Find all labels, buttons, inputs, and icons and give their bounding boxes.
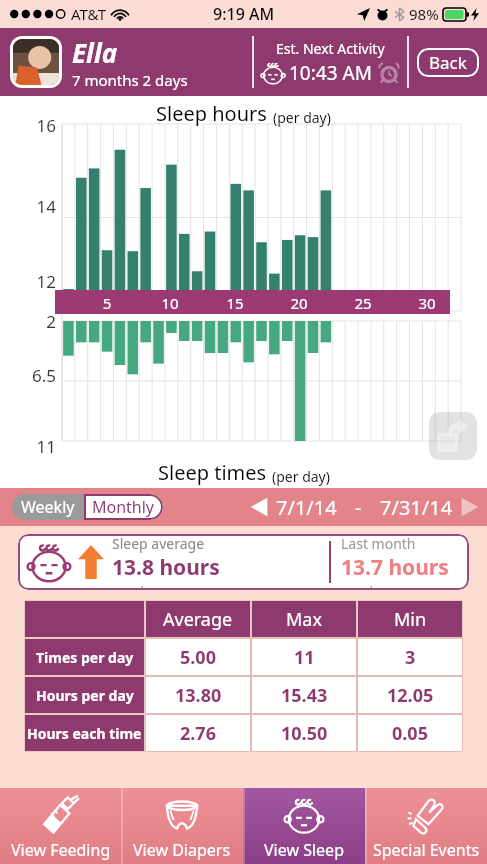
staticText: 5.00 (180, 645, 216, 670)
button[interactable]: View Diapers (121, 788, 243, 864)
staticText: Monthly (92, 496, 155, 518)
staticText: 15.43 (281, 683, 328, 708)
staticText: 15 (223, 293, 247, 313)
staticText: Max (286, 607, 322, 632)
button[interactable]: Monthly (84, 494, 163, 520)
button[interactable]: Next period (459, 496, 481, 518)
staticText: Sleep average (112, 534, 205, 553)
staticText: AT&T (71, 4, 106, 24)
staticText: Weekly (21, 496, 75, 518)
staticText: 10:43 AM (289, 60, 372, 86)
staticText: 13.8 hours (112, 553, 220, 582)
staticText: View Diapers (133, 839, 231, 861)
staticText: - (355, 494, 362, 521)
staticText: 25 (351, 293, 375, 313)
staticText: Last month (341, 534, 416, 553)
button[interactable]: Special Events (365, 788, 487, 864)
staticText: 0.05 (392, 721, 428, 746)
staticText: 13.7 hours (341, 553, 449, 582)
staticText: (per day) (273, 108, 331, 127)
staticText: 3 (405, 645, 416, 670)
button[interactable]: Baby photo (10, 36, 62, 88)
staticText: per day (341, 582, 387, 590)
staticText: Hours per day (36, 686, 134, 705)
staticText: Est. Next Activity (276, 39, 385, 58)
staticText: 7 months 2 days (72, 70, 188, 90)
staticText: per day (112, 582, 158, 590)
staticText: 14 (0, 195, 56, 218)
staticText: View Feeding (11, 839, 111, 861)
staticText: 10.50 (281, 721, 328, 746)
button[interactable]: View Feeding (0, 788, 121, 864)
staticText: Average (163, 607, 233, 632)
button[interactable]: Alarm (377, 61, 401, 85)
staticText: 13.80 (175, 683, 222, 708)
staticText: 2.76 (180, 721, 216, 746)
staticText: Times per day (36, 648, 134, 667)
staticText: (per day) (272, 467, 330, 486)
staticText: 20 (287, 293, 311, 313)
button[interactable]: View Sleep (243, 788, 365, 864)
staticText: Hours each time (27, 724, 142, 743)
staticText: Back (429, 51, 467, 74)
staticText: Special Events (373, 839, 480, 861)
staticText: 7/1/14 (276, 494, 337, 521)
staticText: Ella (72, 35, 118, 70)
button[interactable]: Weekly (12, 494, 84, 520)
button[interactable]: Sleep average (18, 534, 469, 590)
staticText: 6.5 (0, 364, 56, 387)
button[interactable]: Back (417, 48, 479, 77)
staticText: View Sleep (264, 839, 344, 861)
staticText: 11 (294, 645, 315, 670)
staticText: 11 (0, 435, 56, 458)
staticText: 98% (409, 4, 439, 24)
staticText: Min (394, 607, 427, 632)
button[interactable]: Previous period (248, 496, 270, 518)
staticText: 2 (0, 310, 56, 333)
button[interactable]: Share (429, 412, 477, 460)
staticText: 30 (415, 293, 439, 313)
staticText: 9:19 AM (213, 3, 275, 25)
staticText: 10 (158, 293, 182, 313)
staticText: Sleep times (158, 459, 272, 486)
staticText: 12.05 (387, 683, 434, 708)
staticText: Sleep hours (156, 100, 273, 127)
staticText: 5 (95, 293, 119, 313)
staticText: 16 (0, 114, 56, 137)
staticText: 12 (0, 270, 56, 293)
staticText: 7/31/14 (380, 494, 453, 521)
